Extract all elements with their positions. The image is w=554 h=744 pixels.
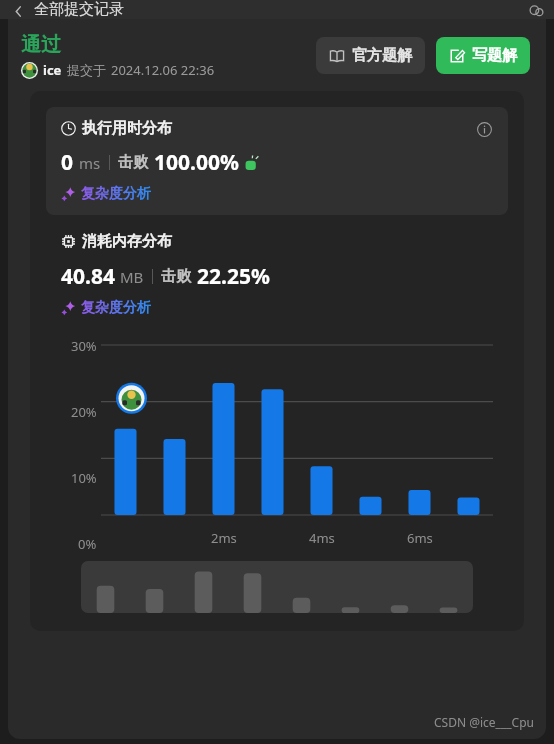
staticText: 10% bbox=[71, 469, 97, 485]
button[interactable]: 更多选项 bbox=[528, 3, 544, 19]
staticText: ms bbox=[79, 153, 101, 173]
staticText: 击败 bbox=[118, 153, 148, 172]
staticText: 20% bbox=[71, 403, 97, 419]
staticText: CSDN @ice___Cpu bbox=[434, 714, 534, 730]
staticText: 官方题解 bbox=[352, 46, 412, 65]
staticText: 2ms bbox=[211, 529, 237, 547]
staticText: 写题解 bbox=[472, 46, 517, 65]
staticText: 0 bbox=[61, 148, 74, 177]
staticText: 击败 bbox=[161, 267, 191, 286]
button[interactable]: 复杂度分析 bbox=[61, 185, 151, 203]
button[interactable]: 说明 bbox=[475, 120, 493, 138]
staticText: 复杂度分析 bbox=[81, 185, 151, 203]
staticText: 通过 bbox=[21, 32, 61, 57]
staticText: 执行用时分布 bbox=[82, 119, 172, 138]
staticText: 6ms bbox=[407, 529, 433, 547]
staticText: 100.00% bbox=[154, 148, 239, 177]
staticText: 30% bbox=[71, 337, 97, 353]
staticText: ice bbox=[43, 61, 62, 79]
staticText: 全部提交记录 bbox=[34, 0, 124, 19]
staticText: 4ms bbox=[309, 529, 335, 547]
button[interactable]: 复杂度分析 bbox=[61, 299, 151, 317]
staticText: 消耗内存分布 bbox=[82, 232, 172, 251]
staticText: 22.25% bbox=[197, 262, 270, 291]
staticText: 提交于 bbox=[67, 62, 106, 78]
button[interactable]: 缩略图滑块 bbox=[81, 561, 473, 613]
button[interactable]: 返回 bbox=[10, 3, 26, 19]
staticText: 复杂度分析 bbox=[81, 299, 151, 317]
button[interactable]: 写题解 bbox=[436, 37, 530, 74]
button[interactable]: 官方题解 bbox=[316, 37, 425, 74]
staticText: 40.84 bbox=[61, 262, 115, 291]
staticText: MB bbox=[120, 267, 144, 287]
staticText: 2024.12.06 22:36 bbox=[111, 61, 215, 79]
staticText: 0% bbox=[78, 535, 97, 551]
